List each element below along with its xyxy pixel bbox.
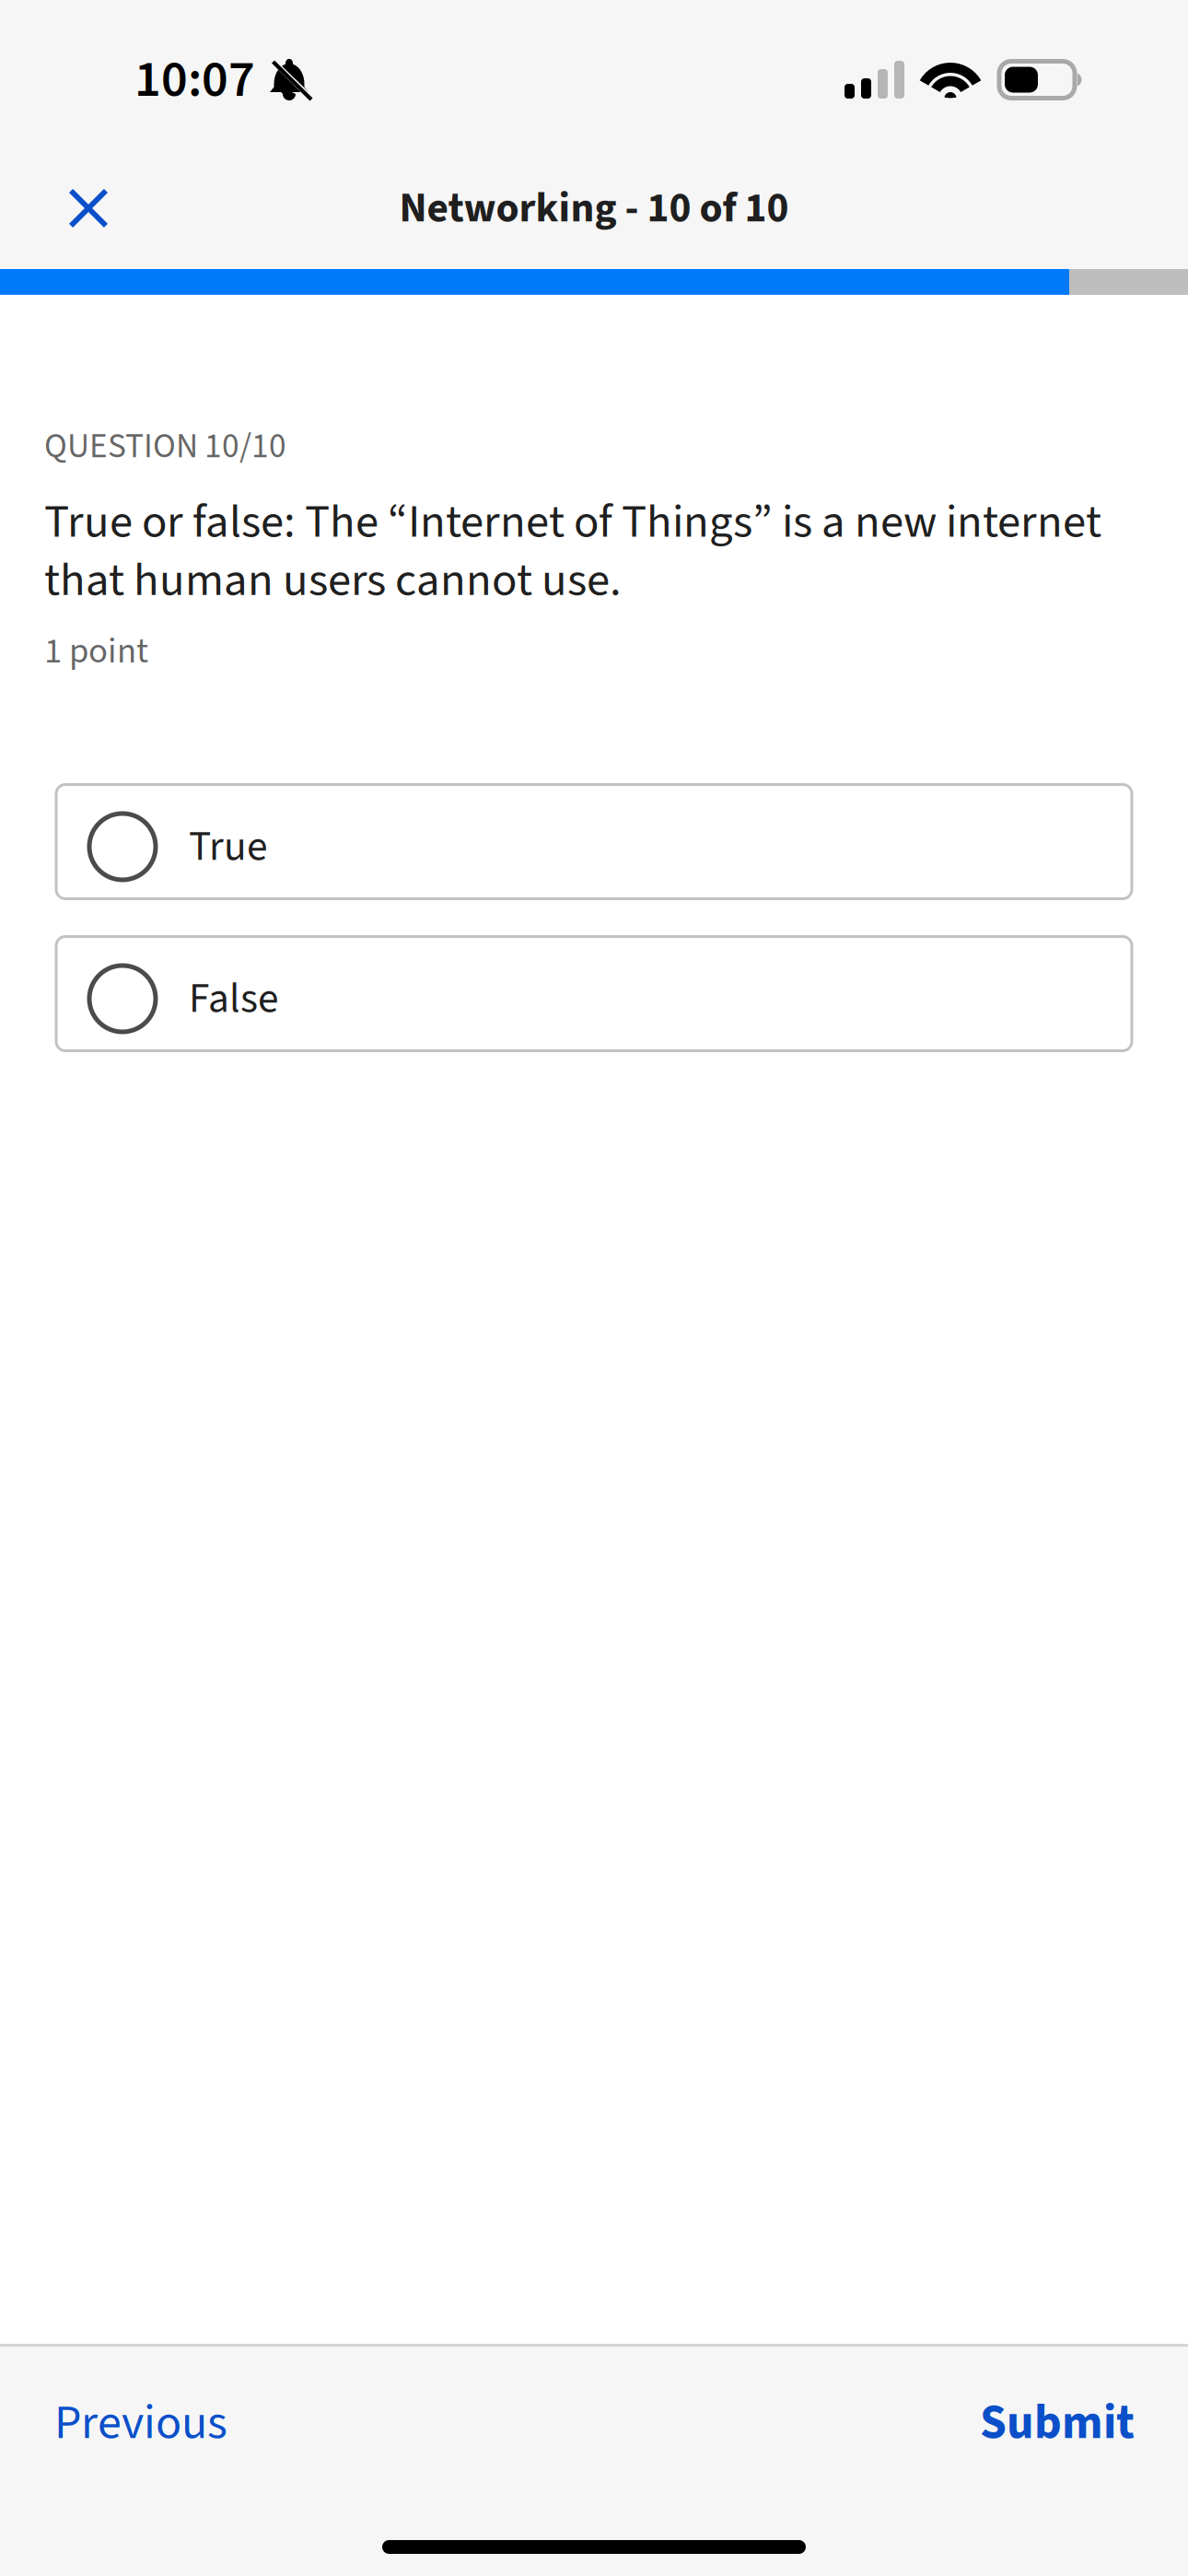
button[interactable]: Submit (969, 2369, 1146, 2477)
staticText: False (189, 969, 278, 1028)
staticText: 1 point (44, 626, 148, 677)
button[interactable]: False (56, 937, 1132, 1051)
staticText: Previous (54, 2389, 227, 2457)
staticText: Networking - 10 of 10 (399, 178, 789, 238)
button[interactable]: Close quiz (42, 162, 134, 254)
button[interactable]: Previous (43, 2369, 239, 2477)
staticText: Submit (980, 2389, 1135, 2457)
button[interactable]: True (56, 785, 1132, 899)
staticText: QUESTION 10/10 (44, 422, 286, 471)
staticText: True or false: The “Internet of Things” … (44, 493, 1101, 609)
staticText: True (189, 817, 267, 876)
staticText: 10:07 (134, 43, 255, 116)
